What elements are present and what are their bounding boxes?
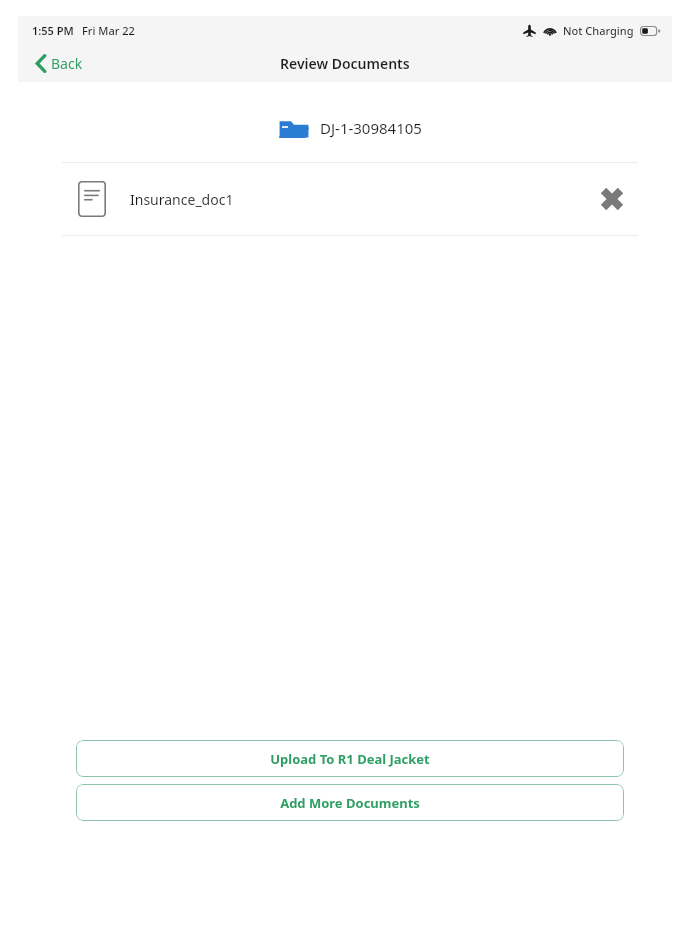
staticText: Back — [51, 54, 83, 73]
button[interactable]: Back — [18, 50, 97, 77]
staticText: Upload To R1 Deal Jacket — [270, 750, 430, 768]
staticText: DJ-1-30984105 — [320, 118, 422, 138]
staticText: Insurance_doc1 — [130, 190, 234, 209]
staticText: Fri Mar 22 — [82, 23, 135, 38]
staticText: 1:55 PM — [32, 23, 74, 38]
button[interactable]: Remove document — [588, 175, 636, 223]
staticText: Not Charging — [563, 23, 634, 38]
staticText: Add More Documents — [280, 794, 420, 812]
button[interactable]: Upload To R1 Deal Jacket — [76, 740, 624, 777]
button[interactable]: Insurance_doc1 — [62, 163, 638, 235]
button[interactable]: Add More Documents — [76, 784, 624, 821]
staticText: Review Documents — [280, 54, 410, 73]
